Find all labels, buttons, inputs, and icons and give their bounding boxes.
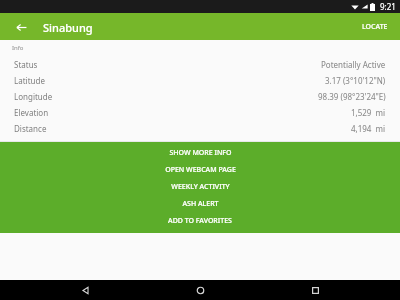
- button[interactable]: ASH ALERT: [0, 195, 400, 212]
- button[interactable]: ADD TO FAVORITES: [0, 212, 400, 229]
- staticText: OPEN WEBCAM PAGE: [165, 165, 236, 175]
- button[interactable]: Recent apps: [285, 280, 345, 300]
- staticText: Potentially Active: [321, 59, 386, 70]
- staticText: 3.17 (3°10'12"N): [325, 75, 386, 86]
- staticText: Distance: [14, 123, 47, 134]
- staticText: SHOW MORE INFO: [169, 148, 232, 158]
- button[interactable]: Back: [55, 280, 115, 300]
- staticText: Status: [14, 59, 38, 70]
- button[interactable]: Navigate up: [10, 16, 32, 38]
- staticText: 9:21: [380, 1, 396, 12]
- staticText: Info: [12, 44, 24, 52]
- staticText: 98.39 (98°23'24"E): [318, 91, 386, 102]
- staticText: ADD TO FAVORITES: [168, 216, 232, 226]
- button[interactable]: Status: [0, 56, 400, 72]
- staticText: ASH ALERT: [182, 199, 219, 209]
- button[interactable]: Elevation: [0, 104, 400, 120]
- staticText: Elevation: [14, 107, 49, 118]
- staticText: 1,529 mi: [351, 107, 386, 118]
- staticText: 4,194 mi: [351, 123, 386, 134]
- staticText: WEEKLY ACTIVITY: [171, 182, 230, 192]
- button[interactable]: Longitude: [0, 88, 400, 104]
- staticText: Latitude: [14, 75, 45, 86]
- button[interactable]: LOCATE: [350, 13, 400, 40]
- staticText: Longitude: [14, 91, 53, 102]
- button[interactable]: Latitude: [0, 72, 400, 88]
- button[interactable]: SHOW MORE INFO: [0, 144, 400, 161]
- button[interactable]: OPEN WEBCAM PAGE: [0, 161, 400, 178]
- button[interactable]: WEEKLY ACTIVITY: [0, 178, 400, 195]
- button[interactable]: Distance: [0, 120, 400, 136]
- staticText: Sinabung: [43, 20, 93, 35]
- button[interactable]: Home: [170, 280, 230, 300]
- staticText: LOCATE: [362, 22, 388, 32]
